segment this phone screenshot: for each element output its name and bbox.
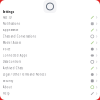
button[interactable]: Model Access (0, 40, 100, 46)
staticText: Model Access (3, 41, 21, 44)
staticText: Face ID (3, 16, 12, 19)
button[interactable]: Data Controls (0, 59, 100, 65)
button[interactable]: Profile (43, 0, 56, 13)
button[interactable]: About (0, 84, 100, 90)
button[interactable]: Connected Apps (0, 52, 100, 59)
staticText: About (3, 85, 12, 89)
staticText: Appearance (3, 28, 19, 32)
staticText: Notifications (3, 22, 20, 25)
button[interactable]: Appearance (0, 27, 100, 33)
staticText: Legal / Other Terms and Notices (3, 73, 46, 76)
button[interactable]: Face ID (0, 14, 100, 20)
button[interactable]: Legal / Other Terms and Notices (0, 71, 100, 78)
button[interactable]: Chats and Conversations (0, 33, 100, 39)
button[interactable]: Archived Chats (0, 65, 100, 71)
staticText: Security (3, 79, 13, 83)
staticText: Voice (3, 47, 11, 51)
staticText: Connected Apps (3, 54, 27, 57)
button[interactable]: Voice (0, 46, 100, 52)
button[interactable]: Help (0, 90, 100, 97)
staticText: Archived Chats (3, 66, 23, 70)
button[interactable]: Security (0, 78, 100, 84)
staticText: Data Controls (3, 60, 21, 64)
button[interactable]: Notifications (0, 20, 100, 27)
staticText: Help (3, 92, 10, 95)
staticText: Settings (3, 10, 14, 14)
staticText: Chats and Conversations (3, 35, 36, 38)
